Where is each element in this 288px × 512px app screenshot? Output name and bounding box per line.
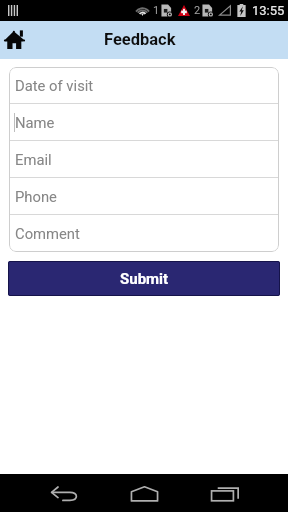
button[interactable]: Date of visit	[9, 67, 279, 103]
button[interactable]: Phone	[9, 178, 279, 214]
staticText: Comment	[15, 225, 80, 242]
staticText: 2	[194, 4, 201, 17]
staticText: Submit	[120, 270, 169, 288]
button[interactable]: Comment	[9, 215, 279, 252]
staticText: 1	[153, 4, 160, 17]
staticText: Phone	[15, 188, 57, 205]
button[interactable]: Name	[9, 104, 279, 140]
button[interactable]: Recents	[185, 474, 265, 512]
staticText: Feedback	[104, 30, 176, 49]
button[interactable]: Home	[4, 28, 25, 50]
staticText: Email	[15, 151, 52, 168]
staticText: Name	[15, 114, 55, 131]
button[interactable]: Submit	[8, 261, 280, 296]
button[interactable]: Back	[24, 474, 104, 512]
button[interactable]: Home	[104, 474, 184, 512]
button[interactable]: Email	[9, 141, 279, 177]
staticText: 13:55	[252, 3, 285, 18]
staticText: Date of visit	[15, 77, 94, 94]
